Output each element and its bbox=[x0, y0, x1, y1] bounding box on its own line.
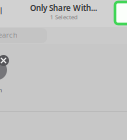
staticText: Cancel bbox=[0, 5, 2, 17]
button[interactable]: Cancel bbox=[0, 4, 2, 18]
staticText: 1 Selected bbox=[50, 13, 78, 21]
staticText: Jan bbox=[0, 86, 2, 94]
staticText: Only Share With... bbox=[30, 3, 97, 13]
staticText: Search bbox=[0, 30, 18, 40]
